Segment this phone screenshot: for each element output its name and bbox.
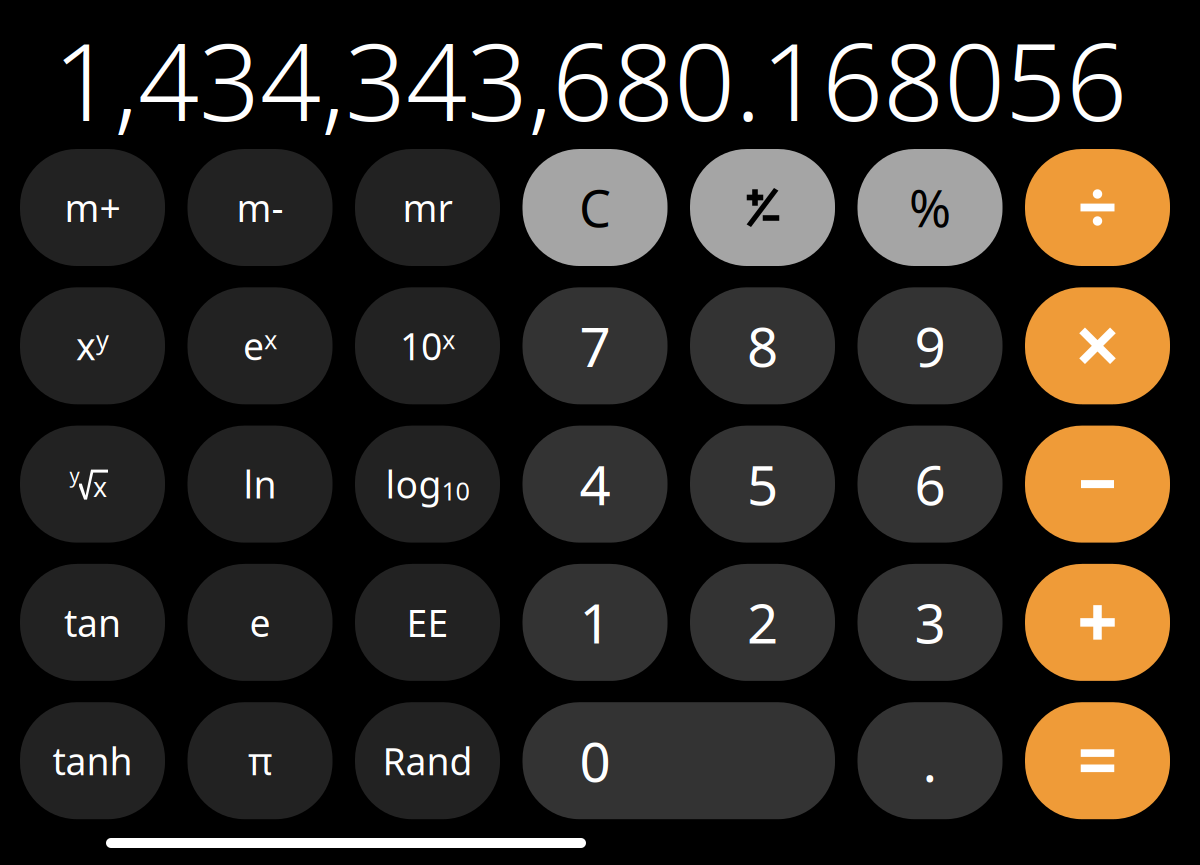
staticText: e	[249, 598, 270, 647]
button[interactable]: Multiply	[1025, 287, 1170, 404]
staticText: 4	[579, 448, 610, 520]
button[interactable]: 7	[522, 287, 667, 404]
staticText: ex	[243, 321, 277, 371]
button[interactable]: Rand	[355, 702, 500, 819]
staticText: ln	[243, 459, 276, 509]
button[interactable]: Minus	[1025, 426, 1170, 543]
staticText: xy	[76, 321, 109, 371]
button[interactable]: %	[857, 149, 1002, 266]
button[interactable]: π	[187, 702, 332, 819]
button[interactable]: ex	[187, 287, 332, 404]
staticText: 5	[747, 448, 778, 520]
staticText: tanh	[52, 736, 132, 785]
button[interactable]: 8	[690, 287, 835, 404]
button[interactable]: xy	[20, 287, 165, 404]
button[interactable]: 10x	[355, 287, 500, 404]
staticText: π	[248, 736, 272, 785]
staticText: x	[93, 469, 107, 504]
staticText: 3	[914, 586, 945, 659]
button[interactable]: C	[522, 149, 667, 266]
button[interactable]: ln	[187, 426, 332, 543]
button[interactable]: Divide	[1025, 149, 1170, 266]
staticText: 8	[747, 309, 778, 382]
button[interactable]: 1	[522, 564, 667, 681]
staticText: %	[909, 174, 951, 241]
staticText: 7	[579, 309, 610, 382]
staticText: mr	[402, 183, 452, 232]
button[interactable]: tanh	[20, 702, 165, 819]
staticText: C	[579, 174, 611, 241]
button[interactable]: 0	[522, 702, 835, 819]
button[interactable]: m+	[20, 149, 165, 266]
button[interactable]: log10	[355, 426, 500, 543]
button[interactable]: m-	[187, 149, 332, 266]
button[interactable]: .	[857, 702, 1002, 819]
button[interactable]: mr	[355, 149, 500, 266]
staticText: log10	[385, 459, 469, 509]
button[interactable]: y	[20, 426, 165, 543]
button[interactable]: EE	[355, 564, 500, 681]
button[interactable]: Plus	[1025, 564, 1170, 681]
button[interactable]: Equals	[1025, 702, 1170, 819]
button[interactable]: 2	[690, 564, 835, 681]
staticText: 1,434,343,680.168056	[53, 8, 1127, 151]
button[interactable]: Plus Minus	[690, 149, 835, 266]
staticText: 10x	[400, 321, 455, 371]
button[interactable]: 9	[857, 287, 1002, 404]
staticText: 1	[579, 586, 610, 659]
staticText: y	[69, 462, 79, 488]
staticText: 0	[579, 724, 610, 797]
staticText: 9	[914, 309, 945, 382]
button[interactable]: 6	[857, 426, 1002, 543]
staticText: m-	[236, 183, 283, 232]
staticText: 6	[914, 448, 945, 520]
button[interactable]: 5	[690, 426, 835, 543]
button[interactable]: 4	[522, 426, 667, 543]
staticText: m+	[64, 183, 120, 232]
button[interactable]: e	[187, 564, 332, 681]
staticText: 2	[747, 586, 778, 659]
button[interactable]: tan	[20, 564, 165, 681]
staticText: .	[922, 724, 937, 797]
staticText: Rand	[382, 736, 472, 785]
staticText: tan	[64, 598, 121, 647]
staticText: EE	[406, 598, 448, 647]
button[interactable]: 3	[857, 564, 1002, 681]
